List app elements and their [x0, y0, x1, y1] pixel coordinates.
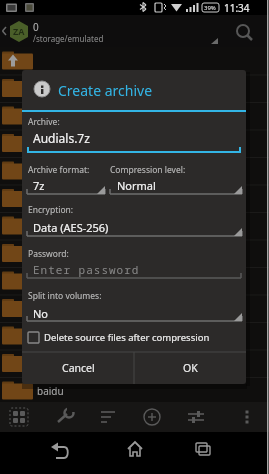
staticText: Data (AES-256): [33, 220, 109, 235]
button[interactable]: [0, 432, 89, 474]
staticText: 7z: [33, 178, 45, 193]
staticText: Archive:: [28, 116, 60, 128]
button[interactable]: [89, 432, 179, 474]
staticText: ZA: [13, 25, 25, 37]
button[interactable]: [27, 297, 242, 321]
button[interactable]: [224, 402, 269, 432]
staticText: Encryption:: [28, 204, 74, 216]
staticText: 0: [33, 20, 39, 34]
staticText: Audials.7z: [33, 130, 90, 146]
button[interactable]: [179, 432, 269, 474]
staticText: /storage/emulated: [33, 33, 104, 44]
staticText: baidu: [37, 384, 64, 398]
button[interactable]: [134, 402, 179, 432]
button[interactable]: [89, 402, 134, 432]
staticText: Cancel: [62, 361, 95, 375]
staticText: Password:: [28, 248, 69, 260]
staticText: Compression level:: [110, 164, 186, 176]
staticText: OK: [183, 361, 198, 375]
staticText: Delete source files after compression: [44, 331, 210, 344]
staticText: No: [33, 306, 49, 321]
staticText: 11:34: [224, 1, 250, 15]
staticText: Enter password: [33, 262, 140, 277]
button[interactable]: [0, 402, 44, 432]
button[interactable]: [27, 122, 241, 153]
button[interactable]: [110, 170, 242, 194]
button[interactable]: Delete source files after compression: [26, 328, 242, 348]
button[interactable]: [44, 402, 89, 432]
button[interactable]: ZA: [0, 15, 269, 47]
button[interactable]: [27, 212, 242, 236]
button[interactable]: OK: [134, 352, 246, 384]
staticText: Archive format:: [28, 164, 90, 176]
button[interactable]: Cancel: [22, 352, 134, 384]
staticText: Create archive: [58, 81, 153, 100]
button[interactable]: [27, 170, 105, 194]
staticText: Normal: [117, 178, 156, 193]
staticText: Split into volumes:: [28, 290, 102, 302]
button[interactable]: [179, 402, 224, 432]
button[interactable]: [27, 254, 242, 278]
staticText: 39%: [204, 4, 216, 12]
